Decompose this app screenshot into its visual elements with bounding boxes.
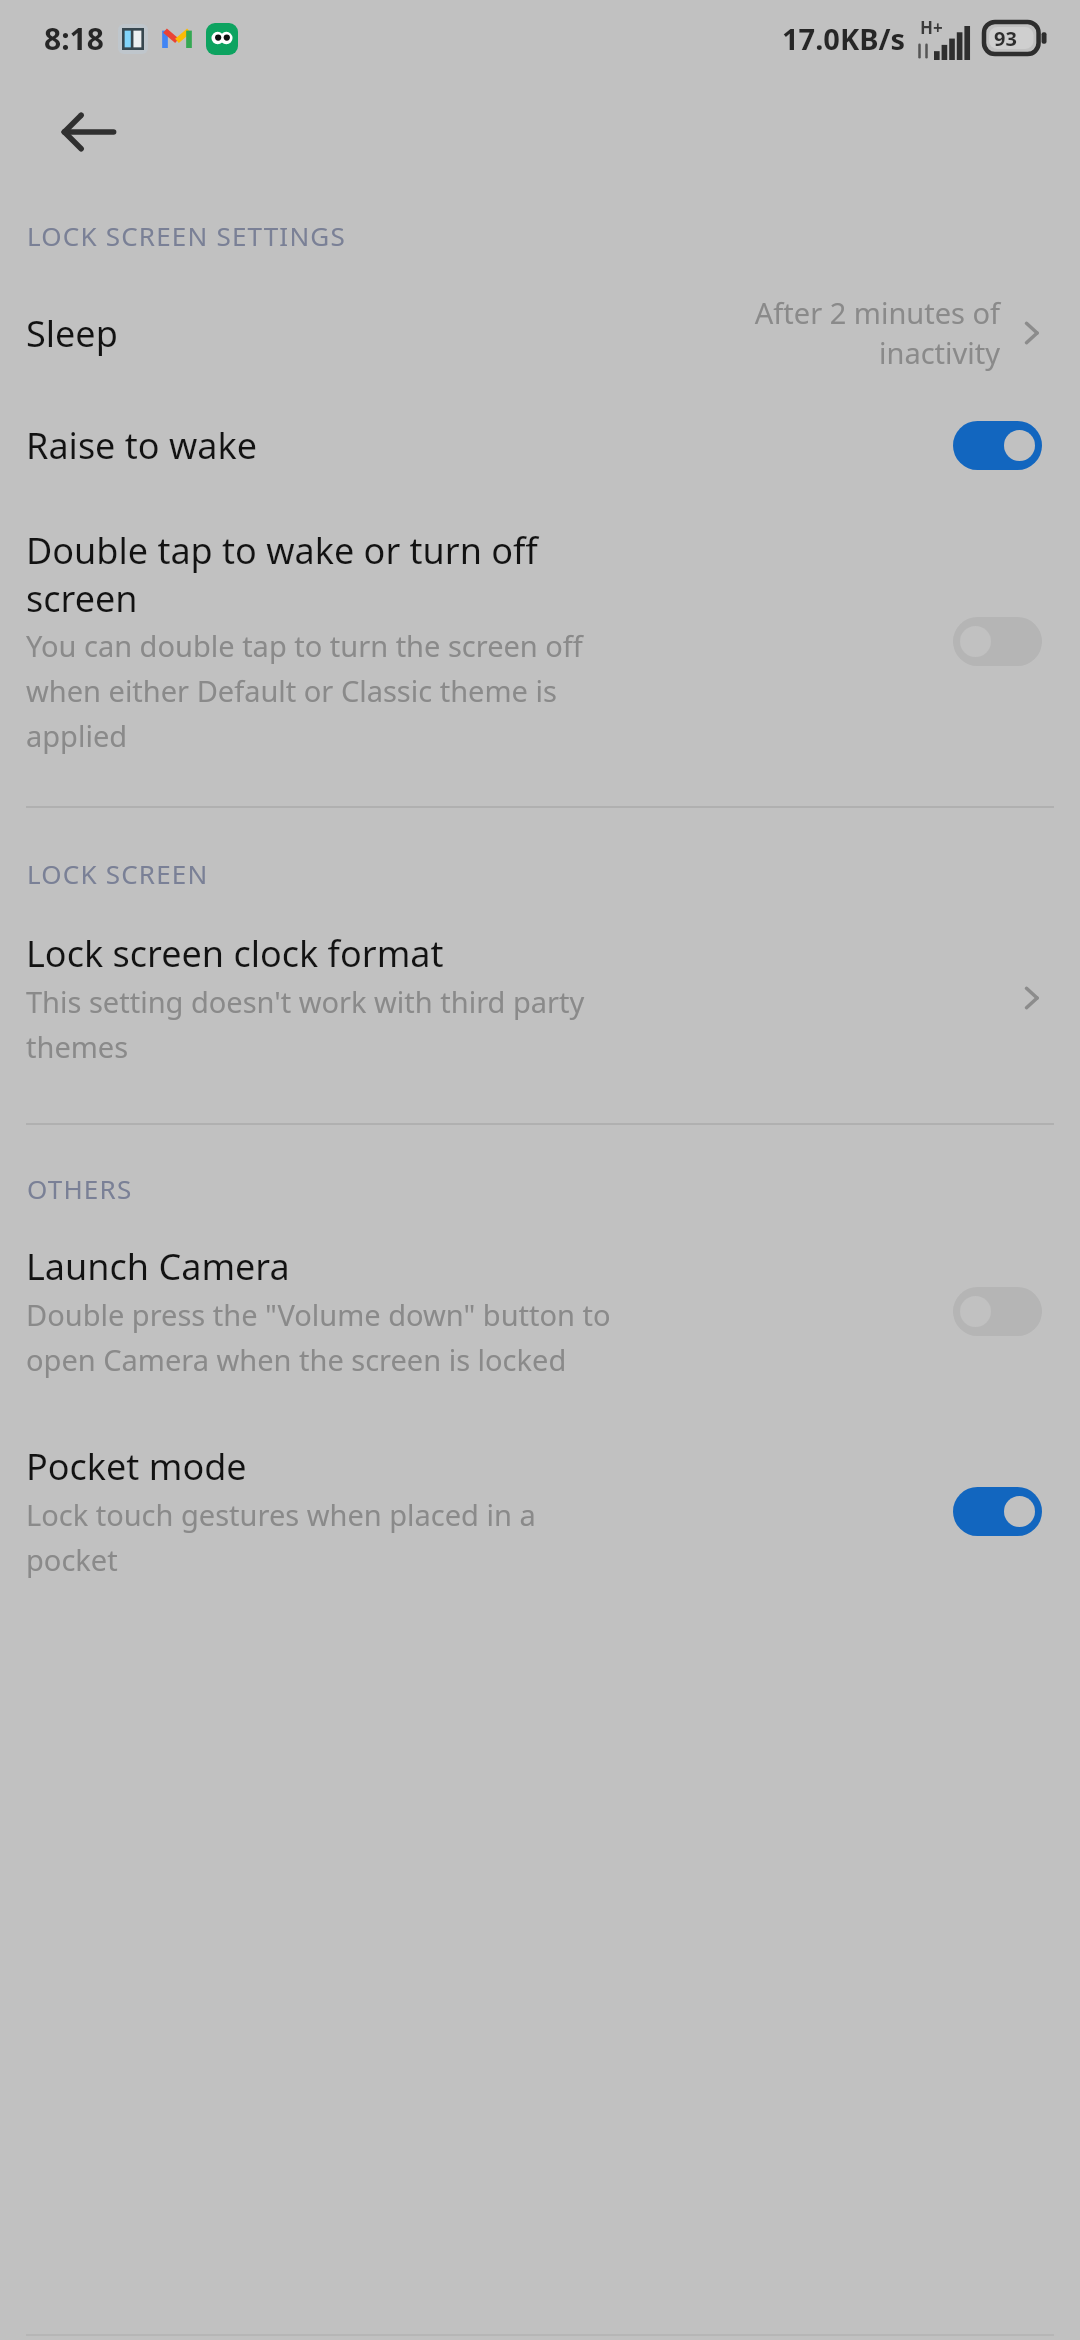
other: Open: [1012, 976, 1056, 1020]
staticText: Sleep: [26, 309, 710, 358]
button[interactable]: Off: [953, 1287, 1042, 1336]
staticText: This setting doesn't work with third par…: [26, 982, 585, 1067]
staticText: LOCK SCREEN SETTINGS: [27, 218, 346, 253]
staticText: LOCK SCREEN: [27, 856, 209, 891]
staticText: 8:18: [44, 18, 104, 59]
staticText: H+: [920, 16, 943, 39]
staticText: OTHERS: [27, 1171, 133, 1206]
button[interactable]: Launch Camera: [0, 1232, 1080, 1390]
button[interactable]: Lock screen clock format: [0, 917, 1080, 1079]
staticText: 17.0KB/s: [782, 19, 906, 58]
button[interactable]: Pocket mode: [0, 1432, 1080, 1590]
other: Open: [1012, 311, 1056, 355]
button[interactable]: Off: [953, 617, 1042, 666]
staticText: 93: [994, 25, 1017, 52]
staticText: After 2 minutes of inactivity: [710, 293, 1000, 373]
staticText: Pocket mode: [26, 1442, 247, 1491]
button[interactable]: On: [953, 421, 1042, 470]
button[interactable]: Sleep: [0, 279, 1080, 387]
button[interactable]: Double tap to wake or turn off screen: [0, 516, 1080, 766]
staticText: Double tap to wake or turn off screen: [26, 526, 538, 622]
staticText: Lock touch gestures when placed in a poc…: [26, 1495, 536, 1580]
button[interactable]: Back: [54, 97, 124, 167]
staticText: Double press the "Volume down" button to…: [26, 1295, 611, 1380]
button[interactable]: Raise to wake: [0, 409, 1080, 482]
staticText: You can double tap to turn the screen of…: [26, 626, 583, 756]
staticText: Lock screen clock format: [26, 929, 444, 978]
button[interactable]: On: [953, 1487, 1042, 1536]
staticText: Launch Camera: [26, 1242, 290, 1291]
staticText: Raise to wake: [26, 421, 953, 470]
